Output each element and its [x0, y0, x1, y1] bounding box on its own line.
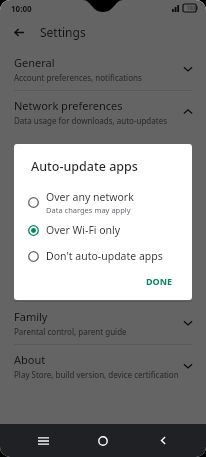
staticText: Settings [40, 24, 86, 40]
staticText: Data usage for downloads, auto-updates [14, 115, 167, 126]
button[interactable]: Over any network [14, 187, 192, 217]
staticText: 10:00 [11, 3, 32, 14]
staticText: Over Wi-Fi only [46, 223, 121, 237]
staticText: Don't auto-update apps [46, 249, 163, 263]
staticText: General [14, 55, 55, 70]
staticText: Play Store, build version, device certif… [14, 369, 179, 380]
staticText: Auto-update apps [31, 158, 138, 175]
staticText: Parental control, parent guide [14, 326, 127, 337]
staticText: Data charges may apply [46, 205, 131, 215]
staticText: DONE [146, 275, 173, 287]
staticText: Account preferences, notifications [14, 72, 142, 83]
button[interactable]: Home [86, 424, 120, 457]
button[interactable]: Recents [26, 424, 60, 457]
button[interactable]: Back [8, 21, 30, 43]
button[interactable]: Family [0, 302, 206, 344]
button[interactable]: Don't auto-update apps [14, 243, 192, 269]
staticText: 100 [187, 5, 195, 11]
staticText: About [14, 352, 46, 367]
button[interactable]: Network preferences [0, 91, 206, 133]
button[interactable]: Over Wi-Fi only [14, 217, 192, 243]
button[interactable]: General [0, 48, 206, 90]
button[interactable]: Back [146, 424, 180, 457]
staticText: Network preferences [14, 98, 123, 113]
staticText: Over any network [46, 190, 134, 204]
button[interactable]: About [0, 345, 206, 387]
staticText: Family [14, 309, 48, 324]
button[interactable]: DONE [141, 272, 178, 290]
